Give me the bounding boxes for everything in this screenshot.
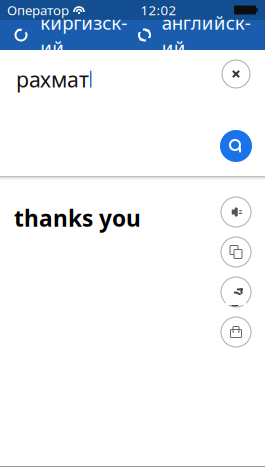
button[interactable]: Listen [221,197,251,227]
button[interactable]: History [6,20,36,50]
staticText: английский [162,10,251,60]
button[interactable]: Clear text [222,60,250,88]
staticText: Оператор [7,1,69,19]
staticText: thanks you [14,203,141,233]
button[interactable]: Add to favorites [221,317,251,347]
staticText: киргизский [40,10,127,60]
button[interactable]: Copy [221,237,251,267]
button[interactable]: Swap languages [131,22,157,48]
button[interactable]: английский [158,5,255,65]
button[interactable]: Translate [220,130,252,162]
button[interactable]: Share [221,277,251,307]
staticText: 12:02 [140,1,176,19]
staticText: рахмат [16,65,89,93]
button[interactable]: киргизский [36,5,131,65]
